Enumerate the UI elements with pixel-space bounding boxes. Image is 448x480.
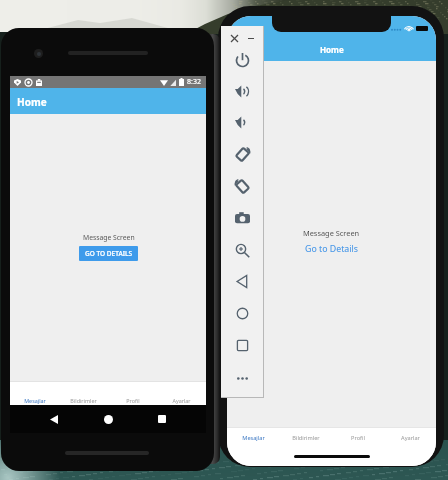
button[interactable]: Ayarlar	[157, 382, 206, 405]
button[interactable]: Volume up	[230, 79, 254, 103]
button[interactable]: Overview	[230, 333, 254, 357]
button[interactable]: Power	[230, 48, 254, 72]
button[interactable]: Mesajlar	[227, 428, 280, 447]
staticText: Profil	[351, 434, 365, 442]
staticText: Ayarlar	[401, 434, 420, 442]
staticText: 8:32	[187, 77, 201, 87]
staticText: Message Screen	[83, 233, 135, 242]
staticText: GO TO DETAILS	[85, 249, 132, 258]
button[interactable]: Close	[226, 30, 242, 46]
button[interactable]: Rotate left	[230, 174, 254, 198]
staticText: Home	[17, 95, 47, 109]
staticText: Go to Details	[305, 243, 359, 255]
button[interactable]: Zoom	[230, 238, 254, 262]
button[interactable]: Take screenshot	[230, 206, 254, 230]
button[interactable]: Recent apps	[152, 409, 172, 429]
button[interactable]: Rotate right	[230, 142, 254, 166]
button[interactable]: GO TO DETAILS	[79, 246, 138, 261]
button[interactable]: Ayarlar	[384, 428, 436, 447]
button[interactable]: Volume down	[230, 110, 254, 134]
staticText: Home	[320, 44, 344, 55]
button[interactable]: Back	[44, 409, 64, 429]
staticText: Mesajlar	[24, 397, 46, 404]
button[interactable]: Mesajlar	[10, 382, 59, 405]
button[interactable]: Go to Details	[305, 243, 359, 255]
button[interactable]: Home	[98, 409, 118, 429]
button[interactable]: Profil	[108, 382, 157, 405]
staticText: Bildirimler	[292, 434, 320, 442]
staticText: Profil	[126, 397, 140, 404]
button[interactable]: Back	[230, 269, 254, 293]
button[interactable]: Profil	[332, 428, 384, 447]
staticText: Ayarlar	[172, 397, 191, 404]
button[interactable]: Bildirimler	[59, 382, 108, 405]
button[interactable]: More	[230, 366, 254, 390]
staticText: Bildirimler	[70, 397, 97, 404]
staticText: Mesajlar	[242, 434, 265, 442]
button[interactable]: Home	[230, 301, 254, 325]
staticText: Message Screen	[303, 228, 360, 238]
button[interactable]: Minimize	[243, 30, 259, 46]
button[interactable]: Bildirimler	[280, 428, 332, 447]
